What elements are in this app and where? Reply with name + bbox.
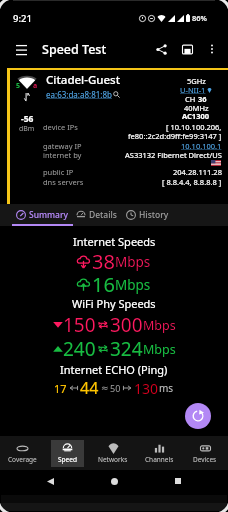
staticText: ms	[159, 381, 174, 395]
staticText: 150	[63, 312, 96, 338]
staticText: Internet Speeds	[73, 234, 156, 249]
staticText: Devices	[193, 455, 217, 464]
button[interactable]: Summary	[4, 204, 81, 226]
staticText: Citadel-Guest	[46, 72, 121, 88]
staticText: Details	[89, 209, 117, 221]
staticText: AS33132 Fibernet Direct/US	[125, 150, 222, 160]
staticText: [ 8.8.4.4, 8.8.8.8 ]	[162, 177, 222, 187]
button[interactable]: Speed	[51, 440, 84, 467]
button[interactable]: Save report	[174, 36, 200, 62]
staticText: 36	[198, 94, 207, 104]
staticText: Coverage	[8, 455, 37, 464]
button[interactable]: Refresh test	[185, 403, 211, 429]
staticText: Networks	[98, 455, 128, 464]
staticText: gateway IP	[43, 141, 82, 151]
staticText: internet by	[43, 150, 82, 160]
staticText: 44	[80, 377, 99, 399]
staticText: 10.10.100.1	[181, 141, 222, 151]
button[interactable]: Home	[103, 470, 125, 492]
staticText: Mbps	[143, 341, 176, 358]
button[interactable]: Navigation menu	[6, 34, 36, 64]
staticText: Internet ECHO (Ping)	[60, 362, 168, 377]
staticText: -56	[21, 113, 34, 125]
staticText: ≈	[101, 383, 109, 393]
staticText: 5GHz	[187, 76, 206, 86]
staticText: U-NII-1	[180, 85, 206, 95]
staticText: a	[33, 81, 38, 91]
button[interactable]: Coverage	[1, 440, 44, 467]
button[interactable]: Channels	[138, 440, 181, 467]
staticText: 38	[92, 248, 115, 275]
staticText: 9:21	[13, 12, 32, 25]
staticText: CH	[185, 94, 198, 104]
button[interactable]: Devices	[186, 440, 224, 467]
staticText: Speed Test	[42, 41, 107, 58]
button[interactable]: Networks	[91, 440, 135, 467]
staticText: History	[139, 209, 169, 221]
button[interactable]: Recent apps	[167, 470, 189, 492]
staticText: Summary	[29, 209, 69, 221]
staticText: Mbps	[143, 317, 176, 334]
staticText: device IPs	[43, 122, 78, 132]
staticText: Channels	[145, 455, 174, 464]
staticText: Speed	[58, 455, 77, 464]
staticText: public IP	[43, 167, 74, 177]
staticText: [ 10.10.100.206,	[166, 122, 222, 132]
staticText: 40MHz	[184, 103, 209, 113]
staticText: dBm	[19, 124, 35, 134]
staticText: 50	[110, 382, 121, 394]
staticText: 5	[16, 81, 21, 91]
staticText: dns servers	[43, 177, 84, 187]
staticText: 300	[110, 312, 143, 338]
staticText: ea:63:da:a8:81:8b	[46, 89, 112, 100]
staticText: 240	[63, 336, 96, 362]
button[interactable]: Share	[148, 36, 174, 62]
staticText: 17	[54, 381, 67, 396]
staticText: 204.28.111.28	[173, 167, 222, 177]
staticText: 86%	[192, 13, 207, 23]
button[interactable]: Back	[39, 470, 61, 492]
staticText: 324	[110, 336, 143, 362]
button[interactable]: Details	[72, 204, 120, 226]
button[interactable]: More options	[200, 37, 224, 61]
staticText: 130	[134, 379, 159, 398]
staticText: 16	[92, 271, 115, 298]
staticText: fe80::2c2d:d9ff:fe99:3147 ]	[128, 131, 222, 141]
staticText: Mbps	[115, 276, 151, 294]
button[interactable]: History	[119, 204, 175, 226]
staticText: AC1300	[182, 111, 210, 121]
staticText: WiFi Phy Speeds	[72, 296, 156, 311]
staticText: Mbps	[115, 253, 151, 271]
